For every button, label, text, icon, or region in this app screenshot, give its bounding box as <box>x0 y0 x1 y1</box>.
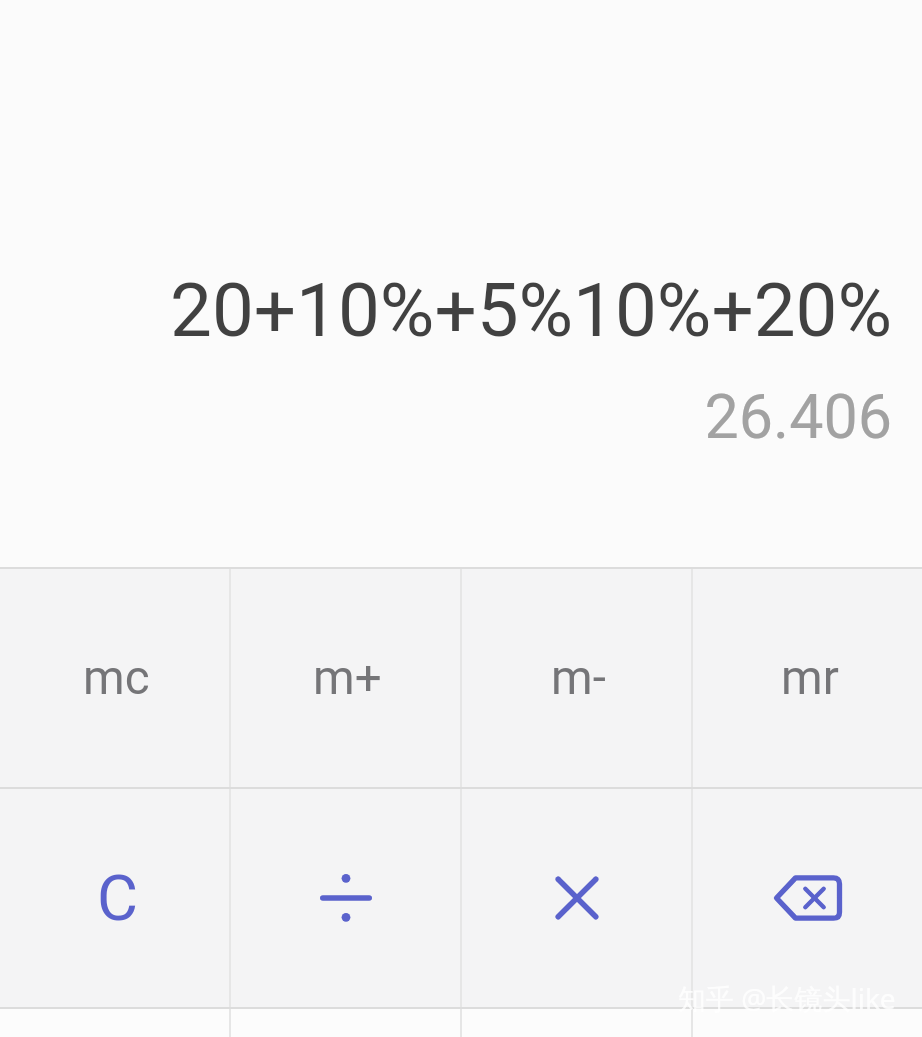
staticText: 20+10%+5%10%+20% <box>0 267 892 354</box>
staticText: C <box>97 862 139 936</box>
button[interactable]: Multiply <box>462 789 691 1007</box>
button[interactable]: Clear <box>0 789 229 1007</box>
button[interactable]: m- <box>462 569 691 787</box>
button[interactable]: m+ <box>231 569 460 787</box>
staticText: mr <box>781 650 839 706</box>
button[interactable]: mc <box>0 569 229 787</box>
button[interactable]: Divide <box>231 789 460 1007</box>
staticText: m+ <box>313 650 382 706</box>
staticText: m- <box>551 650 606 706</box>
staticText: mc <box>83 650 150 706</box>
button[interactable]: mr <box>693 569 922 787</box>
staticText: 26.406 <box>0 381 892 452</box>
staticText: 知乎 @长镜头like <box>678 979 896 1017</box>
button[interactable]: Backspace <box>693 789 922 1007</box>
